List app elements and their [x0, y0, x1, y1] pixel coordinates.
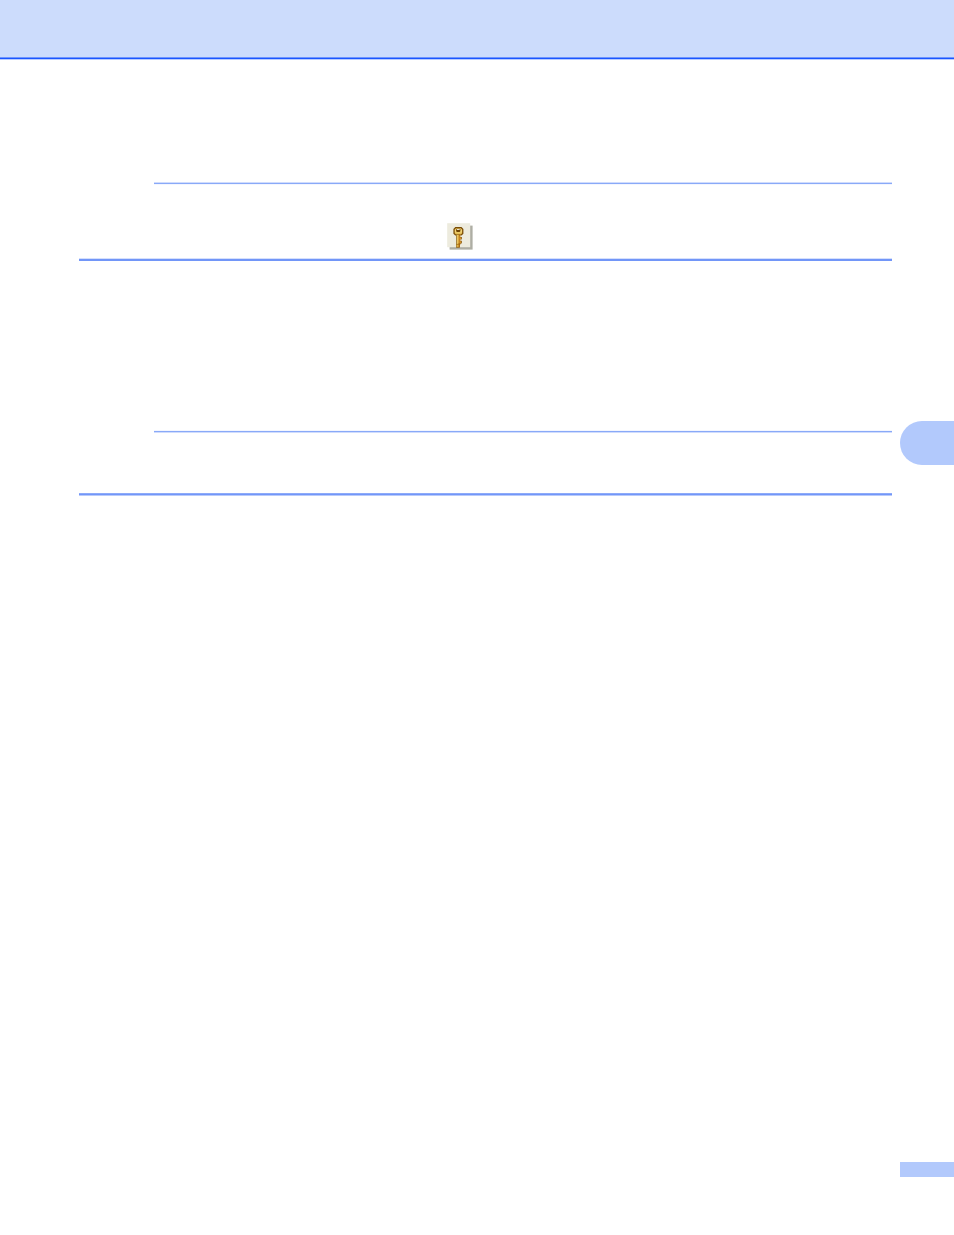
button[interactable]: Security key: [446, 222, 476, 252]
button[interactable]: Section index tab: [900, 421, 954, 465]
